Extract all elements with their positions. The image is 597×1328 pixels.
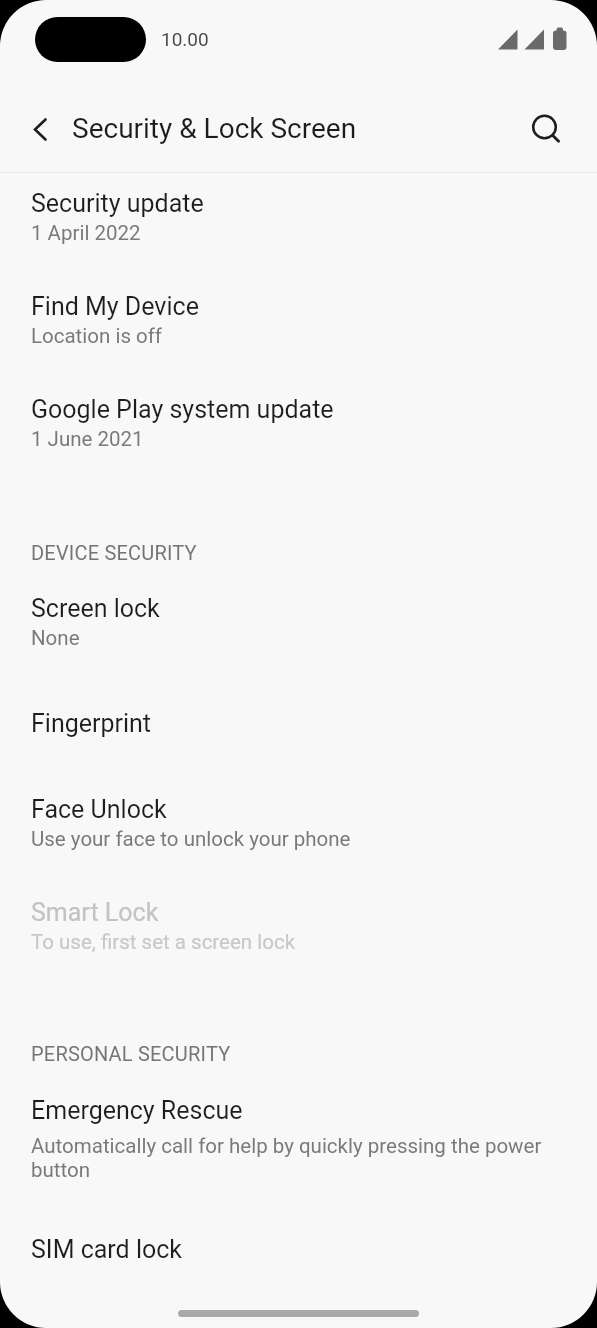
staticText: Automatically call for help by quickly p…: [31, 1134, 556, 1182]
staticText: 1 June 2021: [31, 427, 144, 451]
staticText: 10.00: [161, 28, 209, 50]
staticText: PERSONAL SECURITY: [31, 1042, 231, 1065]
staticText: Google Play system update: [31, 395, 334, 424]
staticText: Face Unlock: [31, 795, 167, 824]
staticText: None: [31, 626, 80, 650]
button[interactable]: Fingerprint: [0, 695, 597, 747]
button[interactable]: Face Unlock: [0, 781, 597, 855]
button[interactable]: [20, 109, 60, 149]
button[interactable]: Emergency Rescue: [0, 1082, 597, 1184]
staticText: Security update: [31, 189, 204, 218]
staticText: SIM card lock: [31, 1235, 182, 1264]
staticText: Fingerprint: [31, 709, 152, 738]
staticText: Screen lock: [31, 594, 160, 623]
staticText: Location is off: [31, 324, 162, 348]
staticText: Security & Lock Screen: [72, 112, 357, 145]
staticText: Smart Lock: [31, 898, 159, 927]
button[interactable]: Smart Lock: [0, 884, 597, 958]
button[interactable]: Find My Device: [0, 278, 597, 352]
staticText: DEVICE SECURITY: [31, 541, 197, 564]
staticText: Find My Device: [31, 292, 199, 321]
staticText: Use your face to unlock your phone: [31, 827, 351, 851]
staticText: Emergency Rescue: [31, 1096, 243, 1125]
button[interactable]: Google Play system update: [0, 381, 597, 455]
staticText: 1 April 2022: [31, 221, 141, 245]
button[interactable]: SIM card lock: [0, 1221, 597, 1273]
staticText: To use, first set a screen lock: [31, 930, 296, 954]
button[interactable]: Screen lock: [0, 580, 597, 654]
button[interactable]: [524, 107, 564, 147]
button[interactable]: Security update: [0, 175, 597, 249]
